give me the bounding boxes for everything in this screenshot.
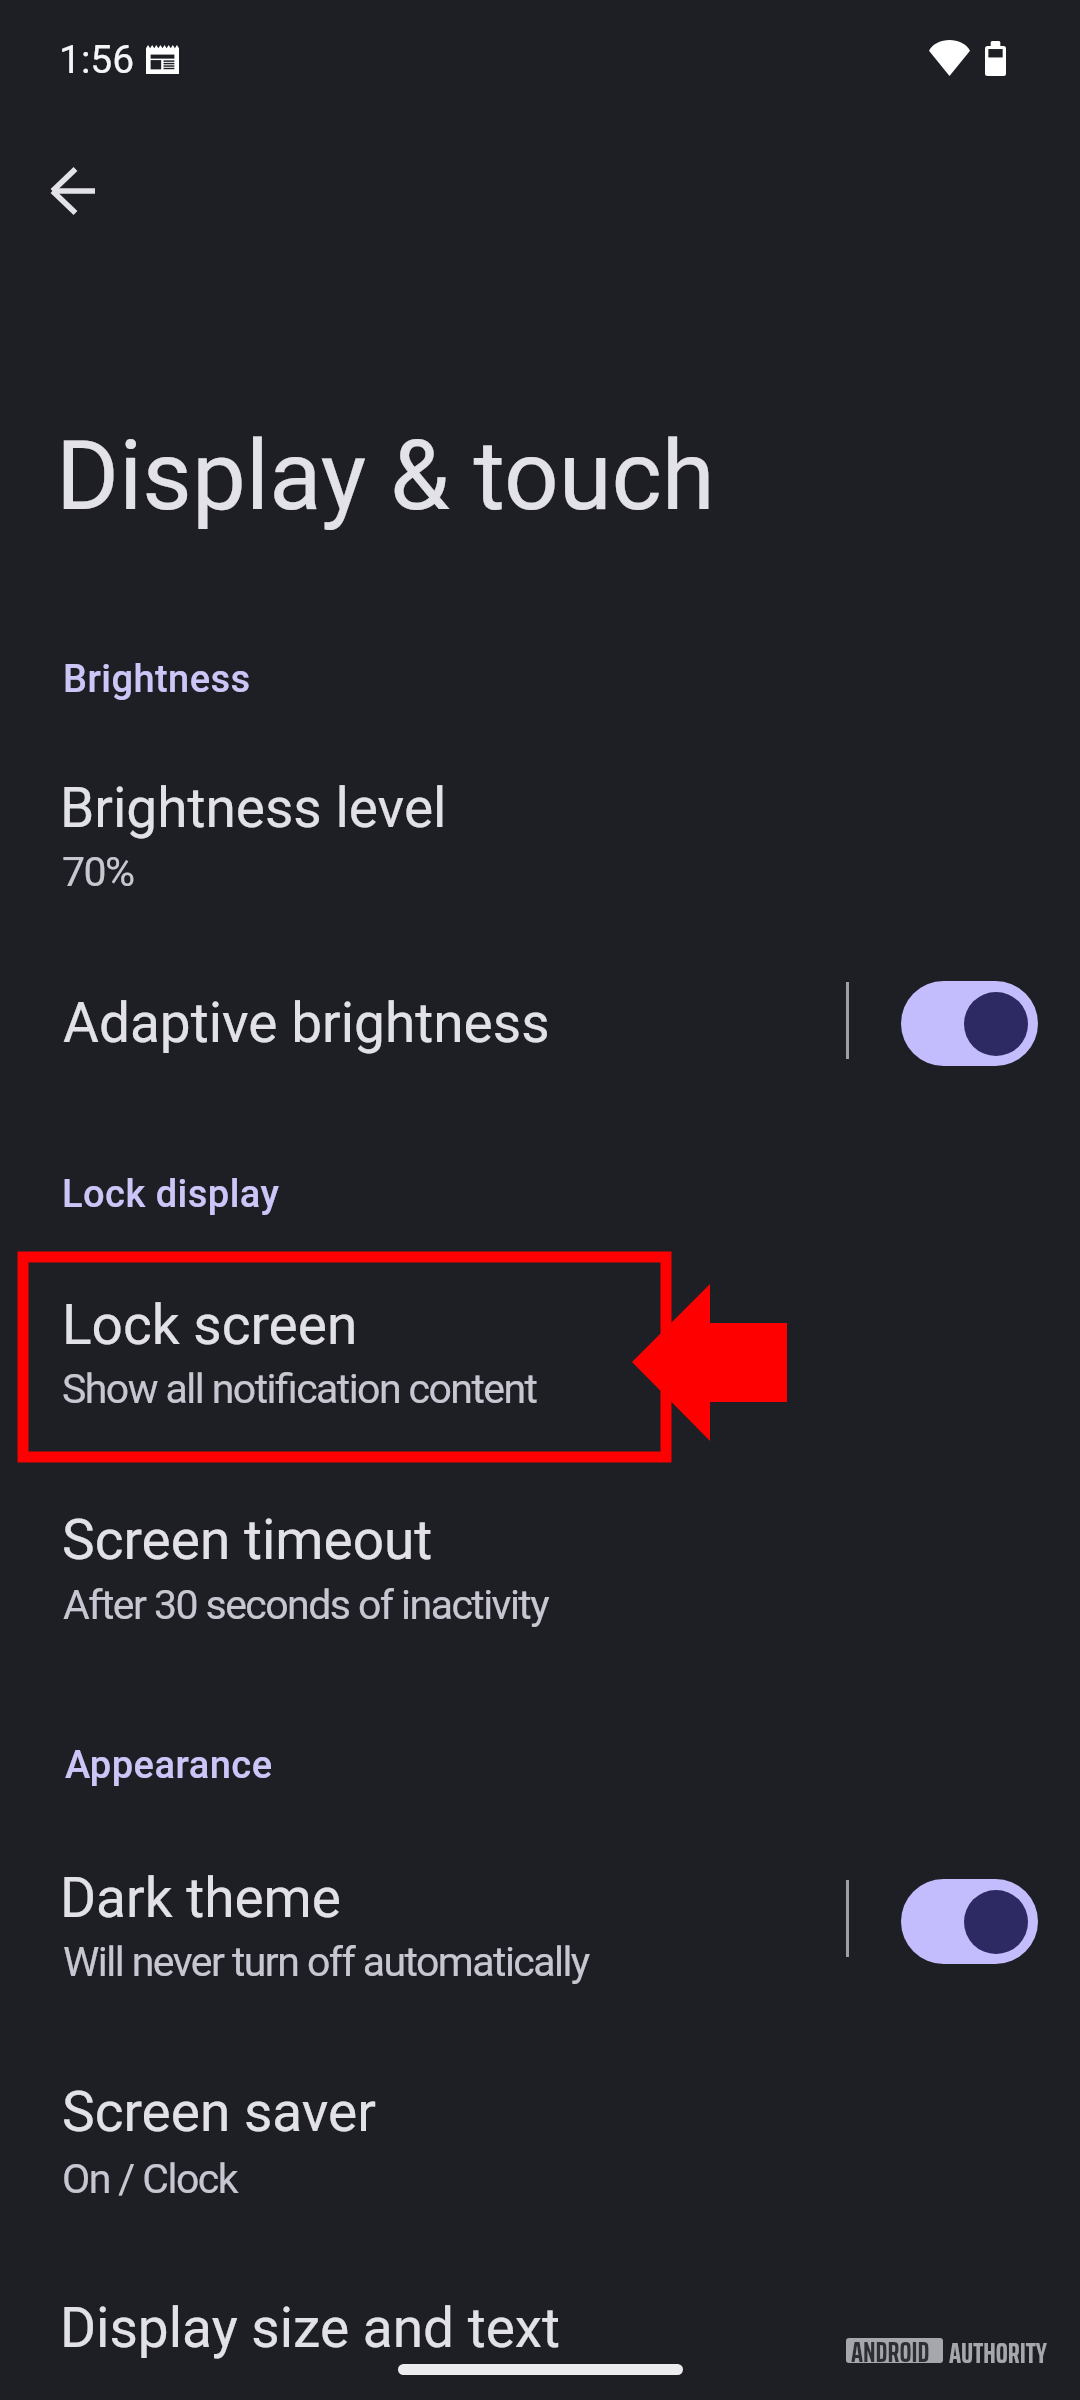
staticText: Adaptive brightness <box>63 991 550 1055</box>
button[interactable]: Adaptive brightness switch <box>901 981 1038 1066</box>
staticText: Will never turn off automatically <box>63 1938 589 1986</box>
button[interactable] <box>0 2056 1080 2205</box>
staticText: Lock screen <box>62 1293 358 1357</box>
staticText: After 30 seconds of inactivity <box>63 1581 549 1629</box>
staticText: Brightness level <box>60 776 447 840</box>
button[interactable] <box>0 1269 1080 1415</box>
button[interactable] <box>0 1842 1080 1988</box>
staticText: Display size and text <box>60 2296 561 2360</box>
staticText: Dark theme <box>60 1866 342 1930</box>
button[interactable] <box>0 752 1080 898</box>
button[interactable]: Dark theme switch <box>901 1879 1038 1964</box>
staticText: AUTHORITY <box>949 2331 1047 2376</box>
staticText: Brightness <box>63 657 251 702</box>
staticText: Screen saver <box>62 2080 376 2144</box>
button[interactable]: Back <box>22 140 126 242</box>
staticText: 70% <box>62 848 134 896</box>
staticText: Screen timeout <box>62 1508 433 1572</box>
staticText: Appearance <box>65 1743 273 1788</box>
staticText: Lock display <box>62 1172 280 1217</box>
button[interactable] <box>0 967 1080 1053</box>
staticText: On / Clock <box>62 2155 237 2203</box>
staticText: Display & touch <box>56 420 715 533</box>
staticText: ANDROID <box>851 2330 930 2375</box>
button[interactable] <box>0 2272 1080 2358</box>
staticText: Show all notification content <box>62 1365 537 1413</box>
staticText: 1:56 <box>59 37 135 83</box>
button[interactable] <box>0 1484 1080 1631</box>
